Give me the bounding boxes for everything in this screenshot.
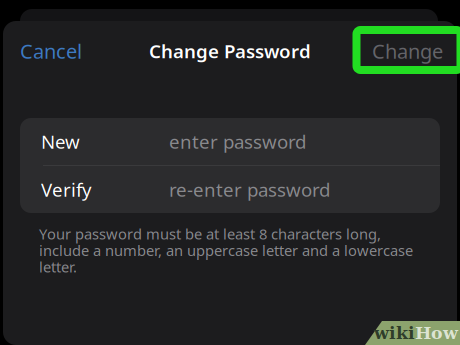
staticText: Change bbox=[372, 38, 443, 64]
staticText: wiki bbox=[374, 323, 415, 343]
staticText: Verify bbox=[41, 177, 92, 202]
staticText: Cancel bbox=[20, 38, 82, 64]
button[interactable]: Cancel bbox=[12, 31, 90, 71]
staticText: Change Password bbox=[149, 39, 311, 63]
staticText: New bbox=[41, 129, 80, 154]
staticText: How bbox=[415, 323, 458, 343]
staticText: enter password bbox=[169, 129, 306, 154]
staticText: include a number, an uppercase letter an… bbox=[39, 240, 413, 260]
button[interactable]: Change bbox=[364, 31, 451, 71]
staticText: re-enter password bbox=[169, 177, 330, 202]
staticText: Your password must be at least 8 charact… bbox=[39, 224, 381, 243]
staticText: letter. bbox=[39, 257, 77, 276]
